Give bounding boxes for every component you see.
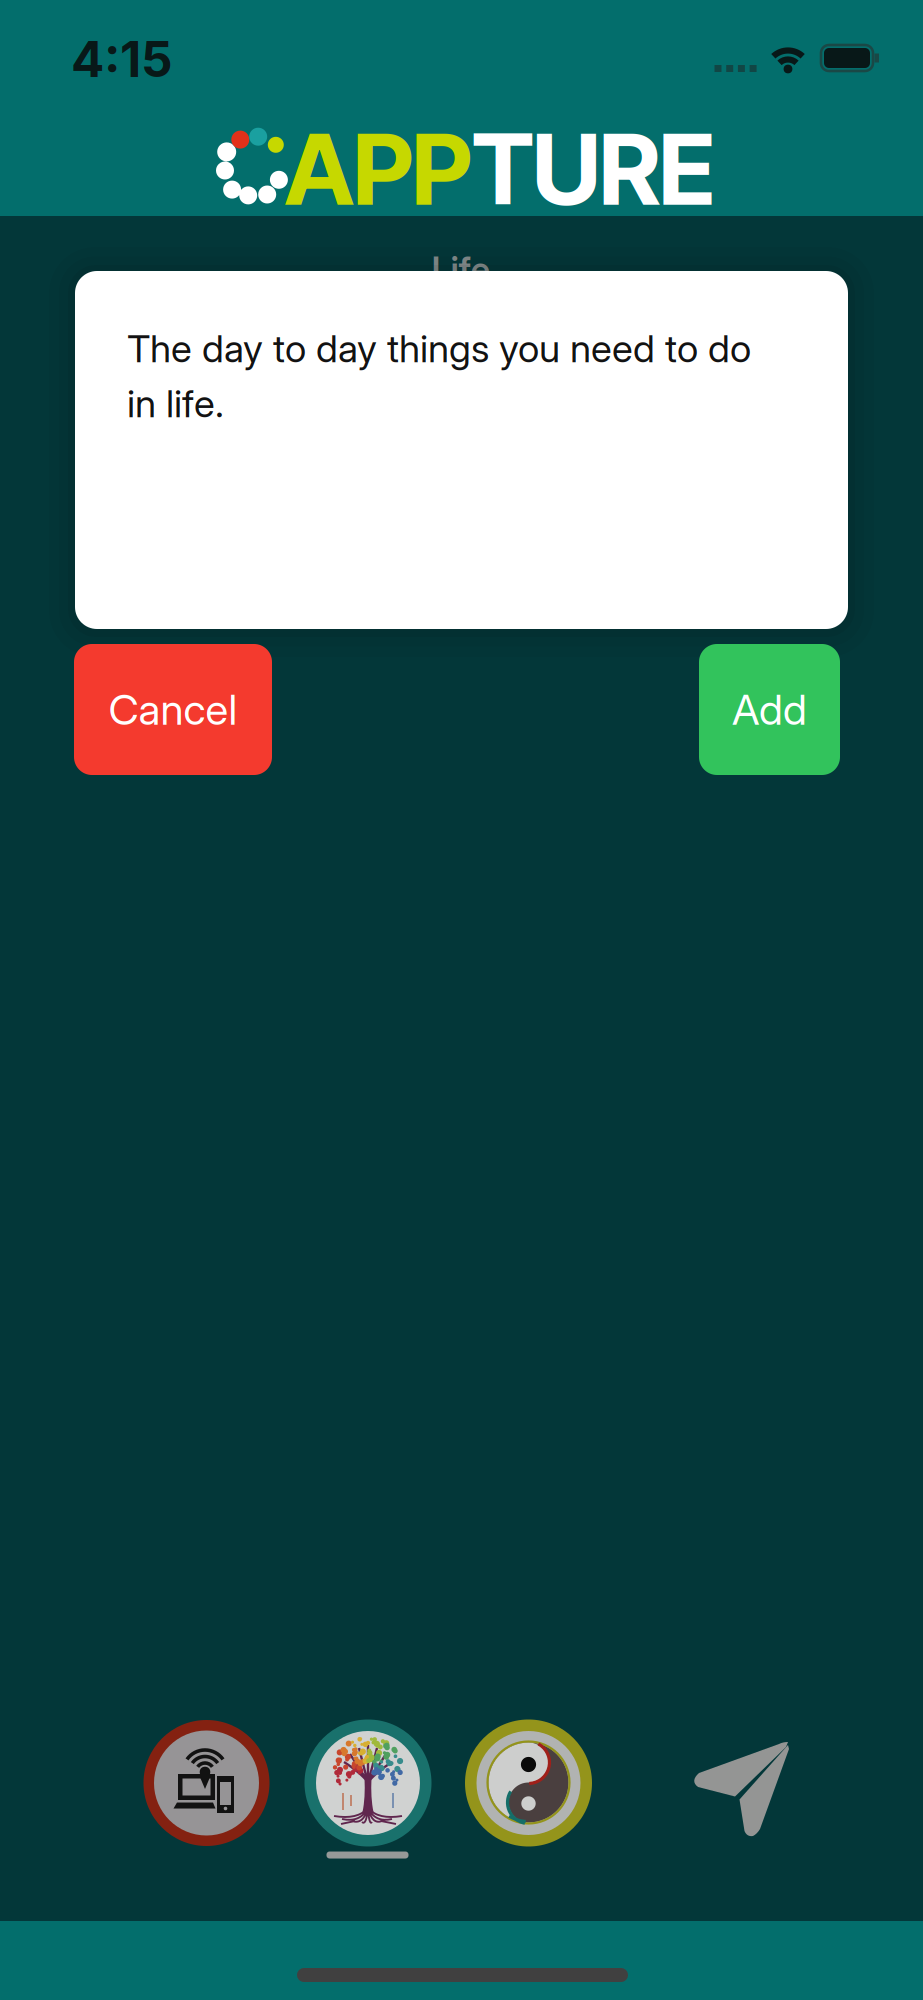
staticText: Cancel	[108, 684, 237, 735]
staticText: 4:15	[71, 29, 173, 89]
staticText: in life.	[127, 380, 224, 426]
staticText: TURE	[472, 110, 716, 228]
staticText: The day to day things you need to do	[127, 325, 751, 371]
staticText: APP	[284, 110, 472, 228]
staticText: Add	[732, 684, 807, 735]
staticText: Life	[431, 249, 490, 291]
